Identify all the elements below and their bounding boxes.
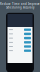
staticText: Scheduling Accuracy xyxy=(6,6,34,9)
staticText: Reduce Time and Improve xyxy=(0,2,40,6)
